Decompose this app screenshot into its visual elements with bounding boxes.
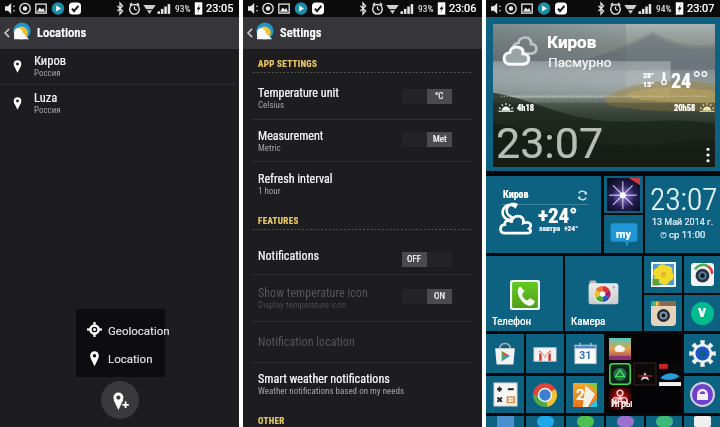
button[interactable]: App (526, 416, 564, 427)
button[interactable]: Measurement (243, 127, 482, 162)
button[interactable]: Киров (486, 176, 601, 253)
button[interactable]: App (606, 416, 644, 427)
staticText: Show temperature icon (258, 286, 368, 300)
button[interactable]: Camera 360 (684, 256, 720, 293)
button[interactable]: App (486, 416, 524, 427)
staticText: Celsius (258, 100, 285, 111)
button[interactable]: Mail.ru (609, 219, 639, 249)
button[interactable]: 23:07 (645, 176, 720, 253)
staticText: Smart weather notifications (258, 372, 390, 386)
button[interactable]: App (646, 416, 682, 427)
staticText: 1 hour (258, 186, 281, 197)
button[interactable]: Location (76, 347, 165, 375)
staticText: 23:05 (206, 2, 234, 15)
staticText: Киров (503, 189, 529, 201)
staticText: 15° (643, 80, 655, 89)
staticText: 4h18 (517, 103, 535, 113)
staticText: APP SETTINGS (258, 59, 318, 70)
staticText: Weather notifications based on my needs (258, 386, 405, 397)
button[interactable]: Notification location (243, 333, 482, 358)
staticText: OFF (407, 254, 422, 265)
button[interactable]: App (566, 416, 604, 427)
button[interactable]: Games folder (606, 334, 682, 413)
button[interactable]: Notifications (243, 247, 482, 272)
staticText: 93% (175, 3, 191, 14)
button[interactable]: Temperature unit (243, 84, 482, 119)
button[interactable]: Calculator (486, 376, 524, 413)
staticText: Киров (547, 32, 597, 52)
staticText: 93% (418, 3, 434, 14)
staticText: 23:07 (650, 181, 718, 218)
staticText: Notifications (258, 249, 320, 263)
staticText: v (698, 302, 707, 321)
button[interactable]: Киров (0, 53, 239, 84)
button[interactable]: Телефон (486, 256, 563, 331)
staticText: 2 (576, 386, 585, 404)
staticText: OTHER (258, 416, 285, 427)
button[interactable]: ON (402, 289, 452, 304)
button[interactable]: Calendar (566, 334, 604, 373)
button[interactable]: Камера (565, 256, 642, 331)
button[interactable]: Back (0, 17, 13, 49)
staticText: 31 (579, 349, 592, 362)
button[interactable]: Instagram (644, 295, 682, 331)
button[interactable]: Luza (0, 90, 239, 121)
staticText: 23:07 (496, 118, 604, 168)
staticText: Luza (34, 90, 58, 105)
staticText: 13 Май 2014 г. (652, 217, 714, 228)
staticText: Киров (34, 53, 66, 68)
button[interactable]: Chrome (526, 376, 564, 413)
staticText: 23:07 (687, 2, 715, 15)
staticText: +24° (538, 204, 578, 229)
staticText: Geolocation (108, 324, 170, 337)
button[interactable]: OFF (402, 252, 452, 267)
button[interactable]: Widget options (701, 143, 715, 167)
staticText: Пасмурно (548, 54, 612, 70)
staticText: Display temperature icon (258, 300, 347, 311)
staticText: Measurement (258, 129, 324, 143)
button[interactable]: Refresh (577, 190, 588, 201)
button[interactable]: Lock (684, 376, 720, 413)
staticText: Игры (611, 398, 633, 410)
staticText: 94% (656, 3, 672, 14)
staticText: Location (108, 352, 153, 365)
staticText: 28° (643, 71, 655, 80)
staticText: Metric (258, 143, 281, 154)
button[interactable]: Galaxy app (607, 178, 640, 211)
staticText: 20h58 (674, 103, 696, 113)
button[interactable]: Киров (493, 24, 715, 167)
staticText: Камера (571, 315, 606, 328)
button[interactable]: Met (402, 132, 452, 147)
staticText: Россия (34, 105, 61, 116)
button[interactable]: Geolocation (76, 319, 165, 347)
staticText: ON (434, 291, 445, 302)
staticText: Россия (34, 68, 61, 79)
button[interactable]: Vine (684, 295, 720, 331)
staticText: 23:06 (449, 2, 477, 15)
staticText: Notification location (258, 335, 355, 349)
button[interactable]: Add location (101, 381, 139, 419)
button[interactable]: Back (243, 17, 256, 49)
staticText: Settings (280, 25, 322, 40)
staticText: Met (433, 134, 447, 145)
button[interactable]: °C (402, 89, 452, 104)
button[interactable]: Show temperature icon (243, 284, 482, 319)
staticText: 24 (671, 69, 692, 92)
button[interactable]: Settings (684, 334, 720, 373)
staticText: FEATURES (258, 216, 299, 227)
button[interactable]: Gmail (526, 334, 564, 373)
staticText: +24° (564, 224, 579, 233)
button[interactable]: Play Store (486, 334, 524, 373)
staticText: Телефон (492, 315, 532, 328)
button[interactable]: App (684, 416, 720, 427)
button[interactable]: Gallery (644, 256, 682, 293)
button[interactable]: Maps (566, 376, 604, 413)
button[interactable]: Smart weather notifications (243, 370, 482, 405)
staticText: завтра (539, 224, 561, 233)
staticText: °C (435, 91, 444, 102)
staticText: my (616, 228, 632, 241)
staticText: Temperature unit (258, 86, 339, 100)
staticText: Refresh interval (258, 172, 333, 186)
staticText: ср 11:00 (669, 229, 706, 240)
button[interactable]: Refresh interval (243, 170, 482, 205)
